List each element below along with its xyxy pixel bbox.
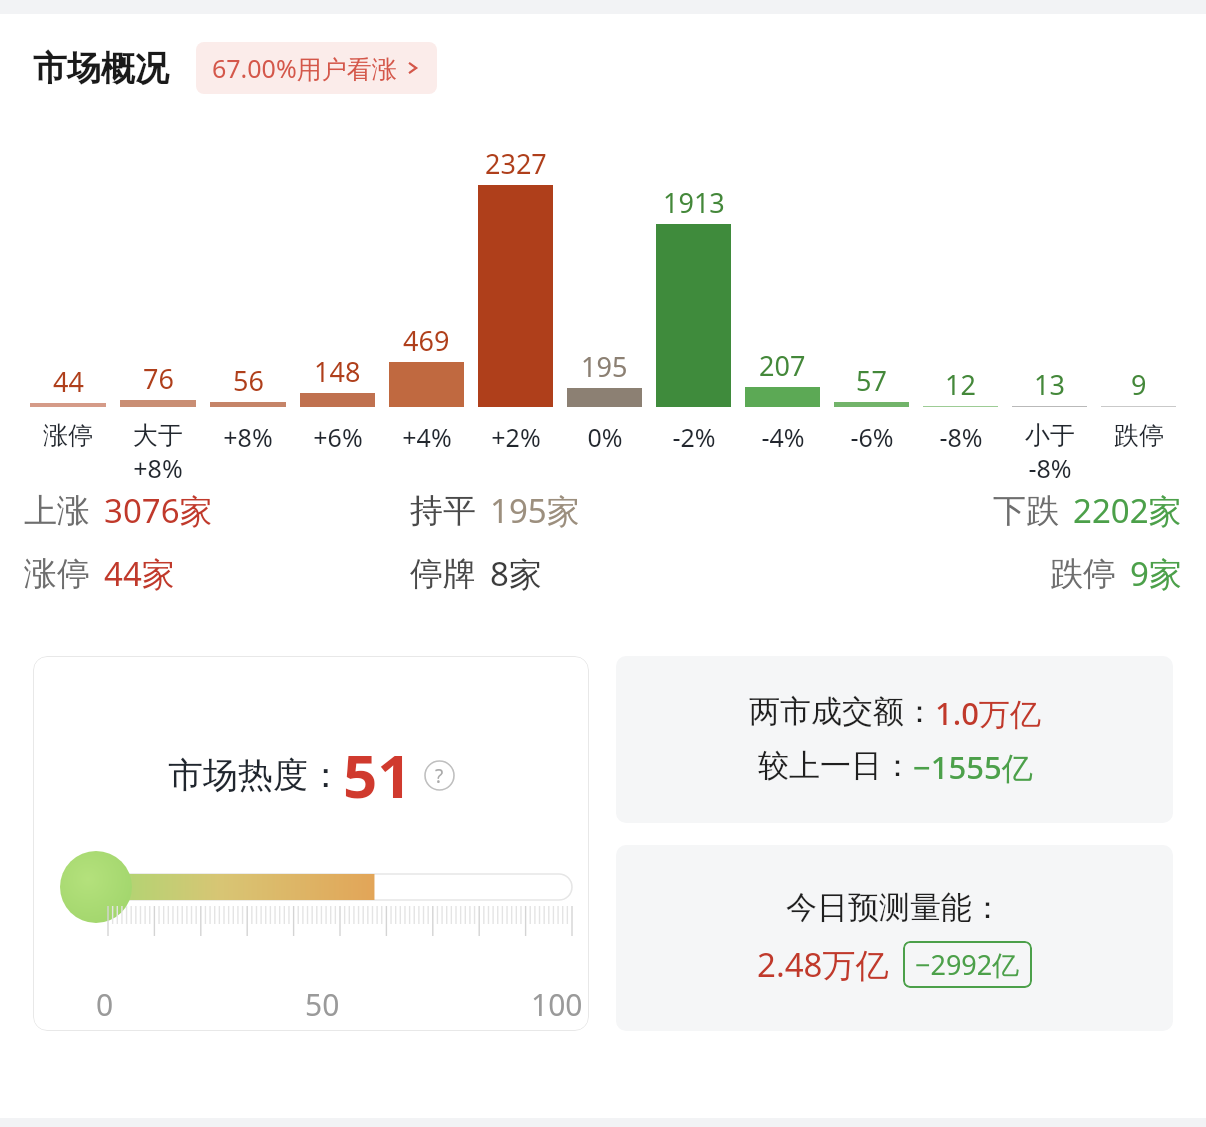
staticText: 1913: [663, 184, 725, 221]
staticText: +2%: [491, 420, 541, 454]
staticText: 44: [53, 363, 84, 400]
staticText: +8%: [133, 451, 183, 484]
staticText: 2202家: [1073, 488, 1182, 533]
staticText: 56: [233, 362, 264, 399]
staticText: 44家: [104, 551, 175, 596]
staticText: -4%: [761, 420, 805, 454]
staticText: 跌停: [1114, 420, 1164, 451]
staticText: 9: [1131, 366, 1147, 403]
staticText: 51: [343, 734, 412, 816]
staticText: 1.0万亿: [935, 692, 1041, 734]
staticText: -6%: [850, 420, 894, 454]
staticText: 涨停: [43, 420, 93, 451]
staticText: 持平: [410, 490, 476, 532]
staticText: 13: [1034, 366, 1065, 403]
staticText: 76: [143, 360, 174, 397]
staticText: 跌停: [1050, 553, 1116, 595]
staticText: 今日预测量能：: [786, 888, 1003, 927]
staticText: 469: [403, 322, 450, 359]
staticText: -8%: [939, 420, 983, 454]
staticText: 0%: [587, 420, 623, 454]
staticText: 两市成交额：: [749, 692, 935, 731]
staticText: -8%: [1028, 451, 1072, 484]
button[interactable]: 今日预测量能：: [616, 845, 1173, 1031]
staticText: 9家: [1130, 551, 1182, 596]
staticText: ?: [435, 763, 444, 789]
staticText: +4%: [402, 420, 452, 454]
staticText: +6%: [313, 420, 363, 454]
button[interactable]: 市场热度：: [33, 656, 589, 1031]
staticText: 195家: [490, 488, 580, 533]
staticText: 小于: [1025, 420, 1075, 451]
staticText: 50: [305, 984, 340, 1025]
staticText: 100: [531, 984, 583, 1025]
staticText: 停牌: [410, 553, 476, 595]
button[interactable]: 两市成交额：: [616, 656, 1173, 823]
staticText: −1555亿: [913, 746, 1033, 788]
staticText: 2327: [485, 145, 547, 182]
staticText: 下跌: [993, 490, 1059, 532]
staticText: 3076家: [104, 488, 213, 533]
staticText: 67.00%用户看涨: [212, 51, 397, 85]
staticText: 207: [759, 347, 806, 384]
staticText: 12: [945, 366, 976, 403]
staticText: 8家: [490, 551, 542, 596]
staticText: 195: [581, 348, 628, 385]
staticText: 较上一日：: [758, 746, 913, 785]
staticText: 大于: [133, 420, 183, 451]
staticText: −2992亿: [915, 946, 1020, 983]
staticText: 涨停: [24, 553, 90, 595]
staticText: 市场概况: [33, 47, 169, 90]
staticText: +8%: [223, 420, 273, 454]
staticText: 57: [856, 362, 887, 399]
staticText: 上涨: [24, 490, 90, 532]
staticText: 148: [314, 353, 361, 390]
button[interactable]: 帮助: [424, 760, 455, 791]
staticText: 市场热度：: [168, 753, 343, 797]
staticText: 2.48万亿: [757, 942, 889, 987]
staticText: 0: [96, 984, 114, 1025]
button[interactable]: 67.00%用户看涨: [196, 42, 437, 94]
staticText: -2%: [672, 420, 716, 454]
